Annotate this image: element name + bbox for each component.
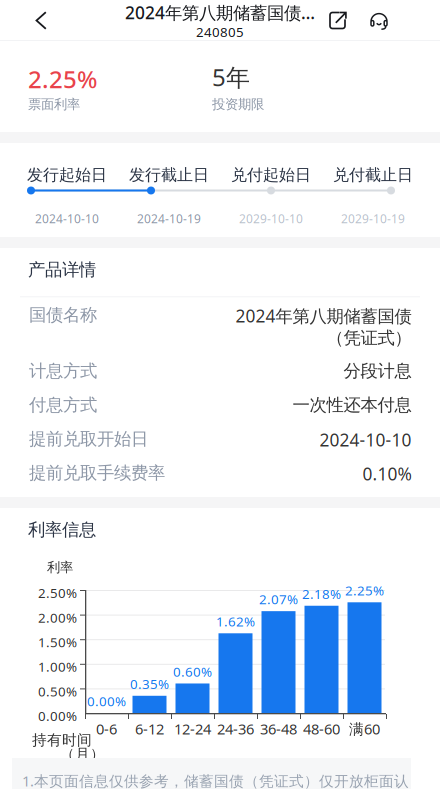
staticText: 付息方式 <box>29 394 97 416</box>
staticText: 发行起始日 <box>27 165 107 185</box>
staticText: 0.10% <box>362 462 411 485</box>
staticText: 国债名称 <box>29 304 97 326</box>
staticText: 1.00% <box>38 658 77 675</box>
staticText: 满60 <box>349 719 380 738</box>
staticText: 2.18% <box>302 585 341 603</box>
staticText: 5年 <box>212 61 250 93</box>
staticText: 0-6 <box>96 719 117 738</box>
staticText: 12-24 <box>174 719 211 738</box>
staticText: 0.60% <box>173 663 212 680</box>
staticText: 持有时间 <box>32 731 92 749</box>
staticText: 2029-10-10 <box>239 211 303 227</box>
staticText: 48-60 <box>303 719 340 738</box>
staticText: 发行截止日 <box>129 165 209 185</box>
staticText: 240805 <box>196 23 244 41</box>
staticText: 1.62% <box>216 612 255 630</box>
staticText: 2024年第八期储蓄国债（凭证式） <box>235 304 411 349</box>
staticText: 0.50% <box>38 682 77 700</box>
staticText: 36-48 <box>260 719 297 738</box>
staticText: 2024-10-10 <box>35 211 99 227</box>
staticText: 利率信息 <box>28 519 96 540</box>
staticText: 1.50% <box>38 633 77 651</box>
staticText: 兑付起始日 <box>231 165 311 185</box>
staticText: 计息方式 <box>29 360 97 382</box>
staticText: 提前兑取手续费率 <box>29 462 165 484</box>
staticText: 投资期限 <box>212 96 264 112</box>
staticText: 票面利率 <box>28 96 80 112</box>
staticText: 2024-10-10 <box>319 428 411 451</box>
staticText: 0.35% <box>130 675 169 693</box>
staticText: 一次性还本付息 <box>292 394 411 416</box>
staticText: 利率 <box>47 559 73 575</box>
staticText: 1.本页面信息仅供参考，储蓄国债（凭证式）仅开放柜面认 <box>22 771 409 789</box>
staticText: 2.25% <box>28 63 97 95</box>
button[interactable]: 分享 <box>319 0 357 41</box>
staticText: 0.00% <box>87 692 126 710</box>
button[interactable]: 返回 <box>21 0 61 41</box>
staticText: 2.50% <box>38 584 77 602</box>
staticText: 6-12 <box>135 719 164 738</box>
staticText: 产品详情 <box>28 259 96 280</box>
staticText: 2024年第八期储蓄国债… <box>125 1 315 24</box>
staticText: 2029-10-19 <box>341 211 405 227</box>
staticText: 提前兑取开始日 <box>29 428 148 450</box>
staticText: 2.07% <box>259 590 298 608</box>
staticText: 2.25% <box>345 581 384 599</box>
staticText: （月） <box>60 745 105 763</box>
staticText: 2024-10-19 <box>137 211 201 227</box>
staticText: 0.00% <box>38 707 77 725</box>
staticText: 2.00% <box>38 609 77 626</box>
staticText: 24-36 <box>217 719 254 738</box>
button[interactable]: 在线客服 <box>360 0 398 41</box>
staticText: 兑付截止日 <box>333 165 413 185</box>
staticText: 分段计息 <box>343 360 411 382</box>
